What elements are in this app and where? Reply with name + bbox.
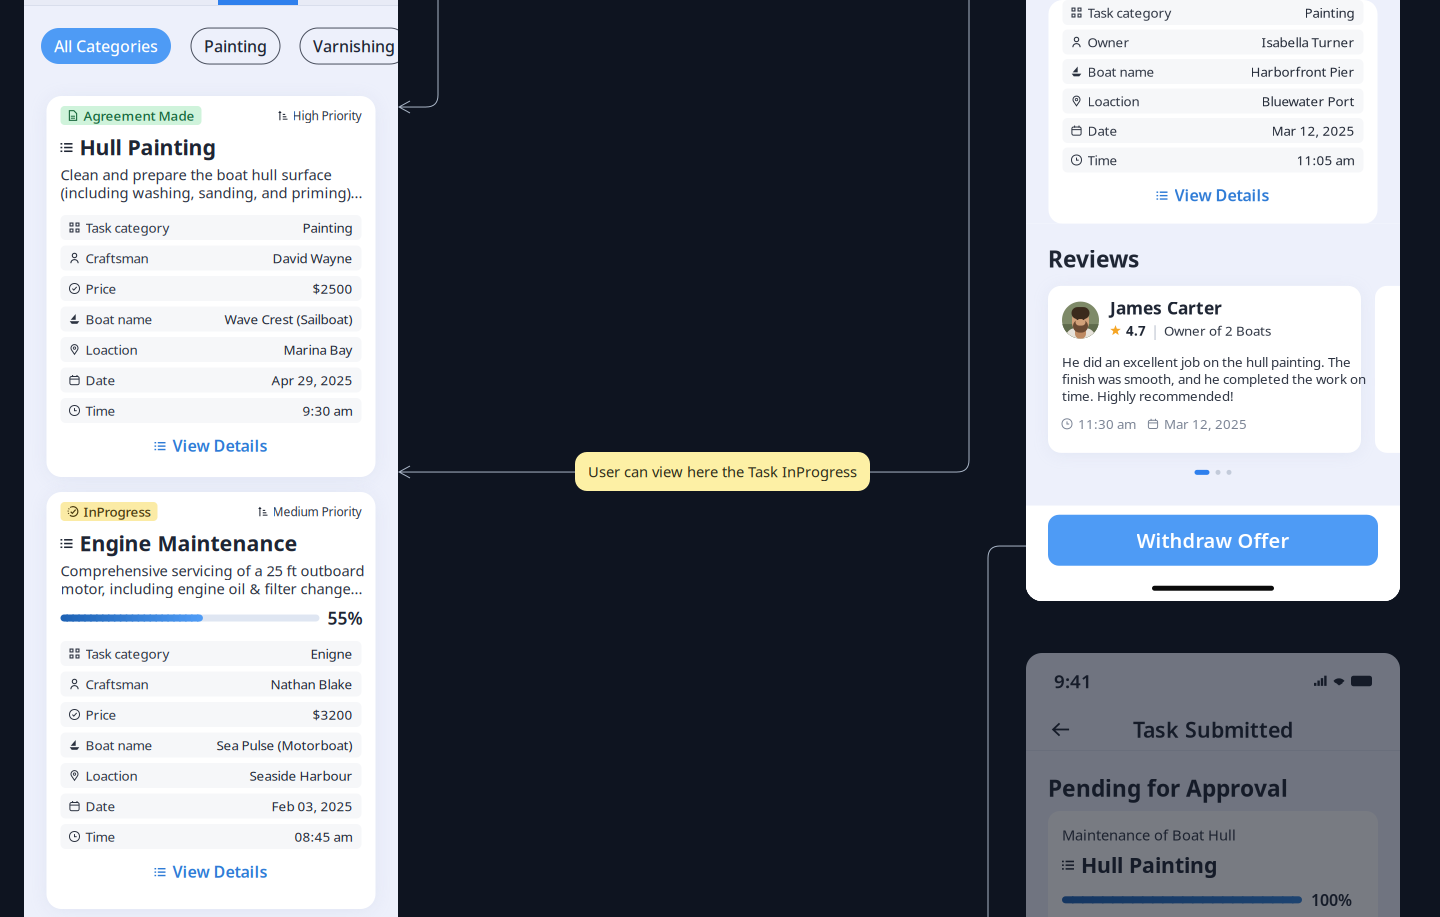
staticText: Clean and prepare the boat hull surface: [60, 165, 331, 184]
staticText: 100%: [1311, 889, 1352, 910]
staticText: Wave Crest (Sailboat): [224, 310, 352, 328]
staticText: Hull Painting: [1081, 850, 1217, 879]
staticText: Agreement Made: [83, 107, 194, 124]
staticText: 08:45 am: [294, 828, 352, 845]
staticText: motor, including engine oil & filter cha…: [60, 579, 362, 598]
staticText: $3200: [312, 706, 352, 723]
staticText: He did an excellent job on the hull pain…: [1062, 353, 1351, 371]
staticText: Nathan Blake: [270, 675, 352, 693]
staticText: Price: [85, 706, 116, 723]
staticText: Painting: [204, 35, 267, 57]
staticText: High Priority: [292, 107, 361, 123]
staticText: Loaction: [85, 767, 137, 784]
staticText: Mar 12, 2025: [1164, 415, 1247, 433]
staticText: 11:30 am: [1078, 415, 1136, 433]
staticText: Craftsman: [85, 675, 148, 693]
staticText: Comprehensive servicing of a 25 ft outbo…: [60, 561, 364, 580]
staticText: Time: [85, 402, 115, 419]
staticText: 9:41: [1054, 669, 1092, 693]
staticText: Seaside Harbour: [249, 767, 352, 784]
staticText: Boat name: [85, 736, 152, 754]
staticText: View Details: [172, 435, 267, 456]
staticText: Date: [85, 797, 115, 815]
staticText: time. Highly recommended!: [1062, 387, 1234, 405]
staticText: All Categories: [54, 35, 158, 57]
staticText: Withdraw Offer: [1136, 527, 1289, 554]
staticText: |: [1151, 321, 1159, 340]
staticText: Isabella Turner: [1261, 33, 1354, 51]
staticText: Owner: [1087, 33, 1129, 51]
staticText: Painting: [302, 219, 352, 236]
button[interactable]: Withdraw Offer: [1048, 515, 1378, 566]
button[interactable]: View Details: [1048, 172, 1377, 218]
staticText: Boat name: [85, 310, 152, 328]
button[interactable]: Back: [1046, 714, 1076, 744]
button[interactable]: All Categories: [41, 28, 171, 64]
staticText: David Wayne: [272, 249, 352, 267]
staticText: James Carter: [1110, 296, 1222, 319]
staticText: Hull Painting: [79, 133, 215, 161]
staticText: Bluewater Port: [1261, 92, 1354, 110]
staticText: Task Submitted: [1133, 715, 1293, 744]
button[interactable]: Agreement Made: [46, 96, 375, 477]
staticText: Task category: [85, 645, 169, 662]
staticText: Engine Maintenance: [79, 529, 297, 557]
staticText: Varnishing: [313, 35, 395, 57]
staticText: Sea Pulse (Motorboat): [216, 736, 352, 754]
staticText: Harborfront Pier: [1250, 63, 1354, 80]
staticText: 4.7: [1126, 322, 1146, 339]
staticText: Enigne: [310, 645, 352, 662]
staticText: (including washing, sanding, and priming…: [60, 183, 362, 202]
button[interactable]: InProgress: [46, 492, 375, 909]
staticText: 55%: [327, 606, 362, 629]
staticText: User can view here the Task InProgress: [588, 462, 857, 481]
staticText: Reviews: [1048, 244, 1139, 274]
staticText: Feb 03, 2025: [271, 797, 352, 815]
staticText: Task category: [85, 219, 169, 236]
staticText: 11:05 am: [1296, 151, 1354, 169]
staticText: Loaction: [1087, 92, 1139, 110]
staticText: Apr 29, 2025: [271, 371, 352, 389]
button[interactable]: James Carter: [1048, 286, 1361, 453]
staticText: Loaction: [85, 341, 137, 358]
staticText: $2500: [312, 280, 352, 297]
button[interactable]: Review 1: [1194, 470, 1209, 475]
staticText: Pending for Approval: [1048, 773, 1288, 803]
button[interactable]: View Details: [60, 849, 361, 894]
staticText: Medium Priority: [272, 503, 361, 519]
staticText: Craftsman: [85, 249, 148, 267]
button[interactable]: Review 2: [1215, 470, 1220, 475]
staticText: Time: [85, 828, 115, 845]
staticText: finish was smooth, and he completed the …: [1062, 370, 1366, 388]
staticText: Owner of 2 Boats: [1164, 322, 1271, 339]
staticText: Task category: [1087, 4, 1171, 21]
button[interactable]: Varnishing: [300, 28, 408, 64]
staticText: Marina Bay: [283, 341, 352, 358]
staticText: Boat name: [1087, 63, 1154, 80]
staticText: Time: [1087, 151, 1117, 169]
button[interactable]: View Details: [60, 423, 361, 468]
staticText: View Details: [1174, 184, 1269, 206]
staticText: Date: [1087, 122, 1117, 139]
staticText: Date: [85, 371, 115, 389]
staticText: Price: [85, 280, 116, 297]
staticText: InProgress: [83, 503, 150, 520]
button[interactable]: Painting: [191, 28, 280, 64]
staticText: Painting: [1304, 4, 1354, 21]
staticText: Maintenance of Boat Hull: [1062, 825, 1236, 844]
staticText: View Details: [172, 861, 267, 882]
staticText: Mar 12, 2025: [1271, 122, 1354, 139]
staticText: 9:30 am: [302, 402, 352, 419]
button[interactable]: Review 3: [1226, 470, 1231, 475]
